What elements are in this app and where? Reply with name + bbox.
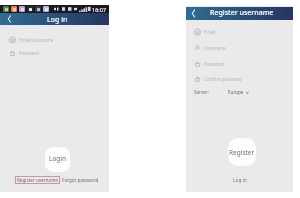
staticText: Register xyxy=(229,148,255,157)
button[interactable]: Register xyxy=(228,138,256,166)
button[interactable]: Login xyxy=(45,147,70,172)
button[interactable]: Forgot password xyxy=(62,176,99,184)
staticText: Europe xyxy=(228,89,244,95)
staticText: Server: xyxy=(194,89,210,95)
button[interactable]: Back xyxy=(186,7,201,20)
button[interactable]: Register username xyxy=(17,177,58,183)
staticText: Forgot password xyxy=(62,177,99,183)
staticText: Confirm password xyxy=(204,76,242,82)
staticText: Login xyxy=(49,154,67,163)
staticText: Register username xyxy=(210,8,274,18)
staticText: Username xyxy=(204,45,226,51)
staticText: Password xyxy=(19,50,39,56)
staticText: Password xyxy=(204,61,224,67)
staticText: Email/Username xyxy=(19,37,54,43)
staticText: Log in xyxy=(233,177,247,184)
button[interactable]: Back xyxy=(0,13,19,25)
staticText: 16:07 xyxy=(92,6,107,13)
staticText: Register username xyxy=(17,177,58,183)
staticText: Log in xyxy=(47,15,68,25)
button[interactable]: Log in xyxy=(232,176,248,185)
button[interactable]: Europe xyxy=(228,89,249,95)
staticText: Email xyxy=(204,29,216,35)
